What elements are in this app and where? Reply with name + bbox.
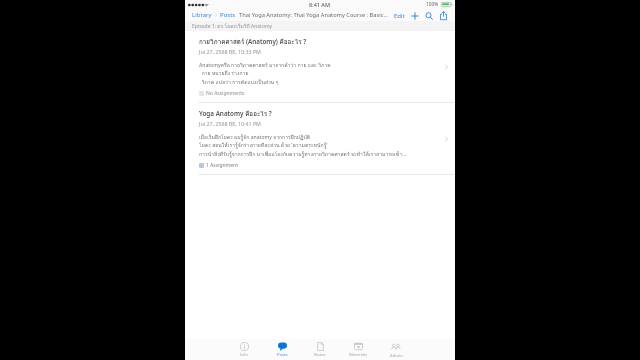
staticText: Jul 27, 2568 BE, 10:41 PM [199,120,261,127]
staticText: Thai Yoga Anatomy: Thai Yoga Anatomy Cou… [239,11,388,19]
button[interactable]: Search [424,10,433,21]
button[interactable]: Admin [377,339,415,360]
button[interactable]: Library [191,11,213,19]
button[interactable]: Edit [393,12,406,20]
staticText: Anatomyหรือ กายวิภาคศาสตร์ มาจากคำว่า กา… [199,61,331,87]
button[interactable]: Posts [219,11,237,19]
staticText: กายวิภาคศาสตร์ (Anatomy) คืออะไร ? [199,37,307,47]
staticText: Edit [394,12,405,20]
staticText: 100% [426,1,439,8]
staticText: Materials [349,352,368,358]
staticText: Episode 1: ดร.โยคะเริ่มวิถี Anatomy [192,22,273,30]
staticText: Yoga Anatomy คืออะไร ? [199,109,272,119]
button[interactable]: Share [439,10,448,21]
staticText: Library [192,11,212,19]
staticText: 8:41 AM [309,1,331,8]
staticText: Admin [390,353,403,359]
staticText: No Assignments [206,90,245,97]
staticText: 1 Assignment [206,162,238,169]
staticText: Notes [314,352,326,358]
button[interactable]: Notes [301,339,339,360]
staticText: Posts [277,352,288,358]
staticText: Jul 27, 2568 BE, 10:33 PM [199,48,261,55]
button[interactable]: กายวิภาคศาสตร์ (Anatomy) คืออะไร ? [185,31,455,102]
button[interactable]: Posts [263,339,301,360]
button[interactable]: Add [410,10,419,21]
button[interactable]: Info [225,339,263,360]
staticText: Info [240,352,248,358]
button[interactable]: Yoga Anatomy คืออะไร ? [185,103,455,174]
staticText: เมื่อเริ่มฝึกโยคะ ผมรู้จัก anatomy จากกา… [199,133,407,159]
button[interactable]: Materials [339,339,377,360]
staticText: Posts [220,11,236,19]
